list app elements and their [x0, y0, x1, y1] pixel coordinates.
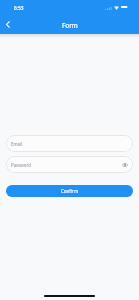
- button[interactable]: Confirm: [6, 185, 133, 197]
- staticText: 6:53: [14, 5, 24, 12]
- staticText: Form: [62, 21, 78, 30]
- button[interactable]: Password: [6, 156, 133, 173]
- button[interactable]: Email: [6, 135, 133, 152]
- button[interactable]: Show password: [120, 160, 129, 169]
- staticText: Confirm: [61, 188, 79, 194]
- button[interactable]: Back: [1, 14, 14, 34]
- staticText: Password: [11, 162, 31, 168]
- staticText: Email: [11, 141, 23, 147]
